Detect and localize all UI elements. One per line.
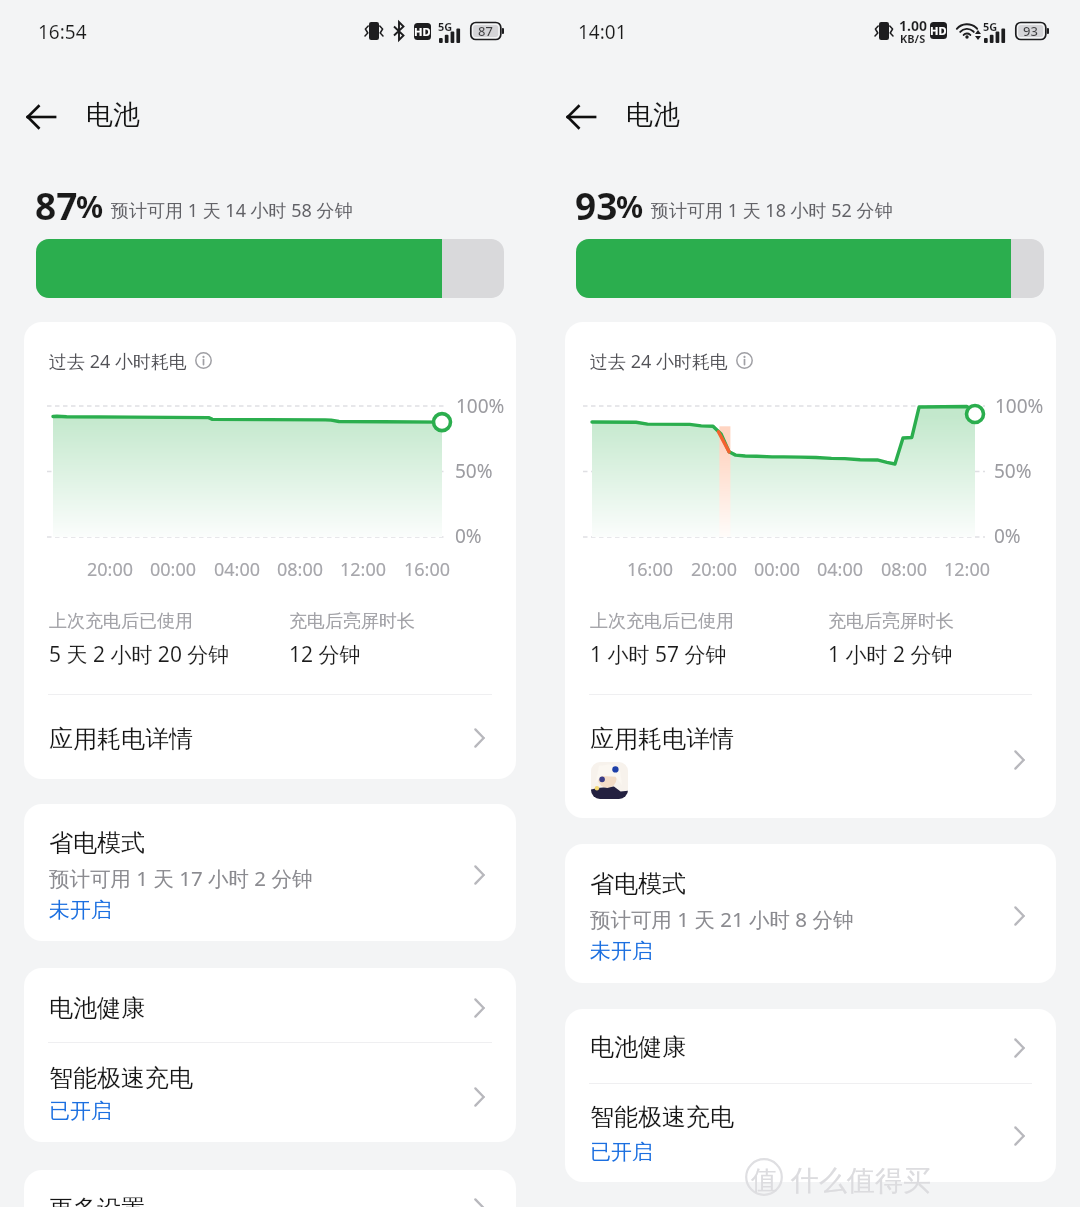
staticText: 上次充电后已使用 bbox=[590, 610, 734, 633]
staticText: 上次充电后已使用 bbox=[49, 610, 193, 633]
staticText: 12:00 bbox=[340, 557, 387, 582]
staticText: 14:01 bbox=[578, 19, 627, 45]
staticText: 电池 bbox=[626, 98, 680, 132]
staticText: 应用耗电详情 bbox=[49, 724, 193, 754]
staticText: 过去 24 小时耗电 bbox=[590, 349, 728, 374]
staticText: 93 bbox=[575, 180, 618, 230]
staticText: 04:00 bbox=[817, 557, 864, 582]
staticText: 12:00 bbox=[944, 557, 991, 582]
staticText: 87 bbox=[478, 22, 493, 40]
staticText: 87 bbox=[35, 180, 78, 230]
staticText: 充电后亮屏时长 bbox=[828, 610, 954, 633]
staticText: 充电后亮屏时长 bbox=[289, 610, 415, 633]
staticText: 20:00 bbox=[87, 557, 134, 582]
button[interactable]: 智能极速充电 bbox=[565, 1084, 1056, 1182]
staticText: 5G bbox=[438, 19, 453, 34]
button[interactable]: 返回 bbox=[18, 94, 64, 140]
staticText: 智能极速充电 bbox=[49, 1063, 193, 1093]
staticText: 预计可用 1 天 18 小时 52 分钟 bbox=[651, 198, 893, 223]
staticText: 50% bbox=[455, 458, 493, 484]
staticText: 1 小时 2 分钟 bbox=[828, 640, 953, 669]
staticText: 预计可用 1 天 14 小时 58 分钟 bbox=[111, 198, 353, 223]
staticText: 100% bbox=[456, 393, 505, 419]
staticText: 16:00 bbox=[627, 557, 674, 582]
staticText: 更多设置 bbox=[49, 1194, 145, 1207]
staticText: 16:00 bbox=[404, 557, 451, 582]
button[interactable]: 电池健康 bbox=[24, 968, 516, 1042]
staticText: 过去 24 小时耗电 bbox=[49, 349, 187, 374]
staticText: HD bbox=[414, 24, 431, 39]
staticText: 0% bbox=[994, 523, 1021, 549]
button[interactable]: 应用耗电详情 bbox=[24, 700, 516, 778]
staticText: HD bbox=[930, 23, 947, 38]
staticText: 04:00 bbox=[214, 557, 261, 582]
staticText: 未开启 bbox=[590, 938, 653, 964]
staticText: 08:00 bbox=[881, 557, 928, 582]
staticText: 电池健康 bbox=[49, 993, 145, 1023]
staticText: 0% bbox=[455, 523, 482, 549]
button[interactable]: 返回 bbox=[558, 94, 604, 140]
staticText: 00:00 bbox=[150, 557, 197, 582]
staticText: 08:00 bbox=[277, 557, 324, 582]
staticText: 5 天 2 小时 20 分钟 bbox=[49, 640, 230, 669]
button[interactable]: 智能极速充电 bbox=[24, 1043, 516, 1142]
staticText: 93 bbox=[1023, 22, 1038, 40]
staticText: 已开启 bbox=[590, 1139, 653, 1165]
staticText: KB/S bbox=[900, 31, 926, 46]
button[interactable]: 应用耗电详情 bbox=[565, 700, 1056, 818]
button[interactable]: 更多设置 bbox=[24, 1170, 516, 1207]
staticText: 省电模式 bbox=[590, 869, 686, 899]
staticText: 未开启 bbox=[49, 897, 112, 923]
staticText: 1 小时 57 分钟 bbox=[590, 640, 727, 669]
staticText: 已开启 bbox=[49, 1098, 112, 1124]
staticText: 电池健康 bbox=[590, 1032, 686, 1062]
staticText: 应用耗电详情 bbox=[590, 724, 734, 754]
staticText: 预计可用 1 天 21 小时 8 分钟 bbox=[590, 905, 854, 933]
button[interactable]: 省电模式 bbox=[24, 804, 516, 941]
staticText: 50% bbox=[994, 458, 1032, 484]
staticText: 16:54 bbox=[38, 19, 87, 45]
staticText: 20:00 bbox=[691, 557, 738, 582]
staticText: 什么值得买 bbox=[791, 1163, 931, 1198]
staticText: 1.00 bbox=[899, 16, 927, 35]
staticText: 值 bbox=[751, 1164, 777, 1197]
staticText: 100% bbox=[995, 393, 1044, 419]
staticText: 5G bbox=[983, 19, 998, 34]
button[interactable]: 电池健康 bbox=[565, 1009, 1056, 1083]
button[interactable]: 省电模式 bbox=[565, 844, 1056, 983]
staticText: 智能极速充电 bbox=[590, 1102, 734, 1132]
staticText: 12 分钟 bbox=[289, 640, 361, 669]
staticText: % bbox=[76, 186, 104, 227]
staticText: 省电模式 bbox=[49, 828, 145, 858]
staticText: 00:00 bbox=[754, 557, 801, 582]
staticText: % bbox=[616, 186, 644, 227]
staticText: 电池 bbox=[86, 98, 140, 132]
staticText: 预计可用 1 天 17 小时 2 分钟 bbox=[49, 864, 313, 892]
